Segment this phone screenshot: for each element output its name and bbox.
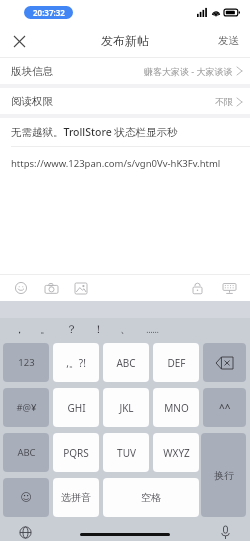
button[interactable]: ,。?! [53, 343, 99, 382]
staticText: ABC [17, 446, 36, 459]
button[interactable]: DEF [153, 343, 199, 382]
button[interactable]: Switch language [16, 524, 34, 541]
staticText: 不限 [215, 96, 233, 107]
staticText: ！ [93, 322, 104, 336]
button[interactable]: 选拼音 [53, 478, 99, 517]
button[interactable]: Shift [203, 388, 246, 427]
button[interactable]: GHI [53, 388, 99, 427]
button[interactable]: 阅读权限 [0, 88, 250, 114]
button[interactable]: 版块信息 [0, 58, 250, 84]
staticText: ABC [116, 356, 136, 370]
button[interactable]: MNO [153, 388, 199, 427]
staticText: 选拼音 [61, 491, 91, 504]
button[interactable]: ， [6, 322, 32, 336]
staticText: ,。?! [66, 356, 86, 370]
staticText: ^^ [219, 401, 231, 415]
button[interactable]: ！ [85, 322, 112, 336]
staticText: 阅读权限 [11, 95, 53, 108]
button[interactable]: Emoji keyboard [3, 478, 49, 517]
staticText: …… [146, 324, 159, 335]
button[interactable]: #@¥ [3, 388, 49, 427]
button[interactable]: …… [139, 324, 166, 335]
staticText: 换行 [214, 469, 234, 482]
staticText: 发送 [218, 34, 239, 47]
button[interactable]: Camera [42, 279, 60, 297]
staticText: 无需越狱。TrollStore 状态栏显示秒 [11, 125, 178, 139]
staticText: 发布新帖 [101, 33, 149, 48]
staticText: 空格 [141, 491, 161, 504]
staticText: 。 [40, 322, 51, 336]
button[interactable]: 无需越狱。TrollStore 状态栏显示秒 [0, 118, 250, 146]
staticText: 、 [120, 322, 131, 336]
button[interactable]: PQRS [53, 433, 99, 472]
staticText: GHI [67, 401, 86, 415]
button[interactable]: 换行 [201, 433, 246, 517]
staticText: DEF [167, 356, 186, 370]
button[interactable]: Close [8, 30, 30, 52]
staticText: ， [14, 322, 25, 336]
button[interactable]: ABC [103, 343, 149, 382]
button[interactable]: Keyboard [220, 279, 238, 297]
button[interactable]: Voice input [216, 524, 234, 541]
staticText: PQRS [63, 446, 89, 460]
staticText: #@¥ [16, 401, 37, 414]
staticText: TUV [117, 446, 136, 460]
staticText: ☺ [20, 491, 32, 504]
button[interactable]: https://www.123pan.com/s/vgn0Vv-hK3Fv.ht… [0, 147, 250, 180]
button[interactable]: 123 [3, 343, 49, 382]
staticText: ？ [66, 322, 77, 336]
button[interactable]: ？ [58, 322, 85, 336]
button[interactable]: 、 [112, 322, 139, 336]
button[interactable]: Backspace [203, 343, 246, 382]
staticText: https://www.123pan.com/s/vgn0Vv-hK3Fv.ht… [11, 157, 221, 170]
button[interactable]: WXYZ [153, 433, 199, 472]
staticText: WXYZ [163, 446, 190, 460]
button[interactable]: 发送 [215, 30, 242, 51]
button[interactable]: Photo [72, 279, 90, 297]
staticText: 123 [18, 356, 35, 369]
staticText: 20:37:32 [33, 7, 65, 18]
button[interactable]: 空格 [103, 478, 199, 517]
button[interactable]: 。 [32, 322, 58, 336]
button[interactable]: JKL [103, 388, 149, 427]
button[interactable]: ABC [3, 433, 49, 472]
button[interactable]: Lock [188, 279, 206, 297]
staticText: JKL [119, 401, 134, 415]
staticText: MNO [164, 401, 189, 415]
staticText: 版块信息 [11, 65, 53, 78]
button[interactable]: TUV [103, 433, 149, 472]
staticText: 赚客大家谈 - 大家谈谈 [144, 65, 233, 77]
button[interactable]: Emoji [12, 279, 30, 297]
